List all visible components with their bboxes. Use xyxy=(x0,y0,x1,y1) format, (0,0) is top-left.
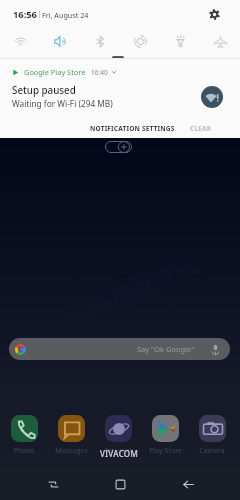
staticText: Internet xyxy=(105,446,132,456)
staticText: NOTIFICATION SETTINGS xyxy=(90,124,175,133)
button[interactable]: Aeroplane mode xyxy=(206,27,234,55)
button[interactable]: Say "Ok Google" xyxy=(9,338,230,360)
button[interactable]: Flashlight xyxy=(166,27,194,55)
button[interactable]: Expand notifications xyxy=(105,141,132,153)
staticText: Play Store xyxy=(149,446,182,456)
staticText: Waiting for Wi-Fi (294 MB) xyxy=(12,98,113,109)
button[interactable]: Wi-Fi xyxy=(6,27,34,55)
button[interactable]: NOTIFICATION SETTINGS xyxy=(80,121,183,136)
staticText: 16:40 xyxy=(91,68,108,77)
button[interactable]: Internet xyxy=(95,415,141,456)
button[interactable]: Home xyxy=(106,470,134,498)
staticText: Phone xyxy=(13,446,35,456)
staticText: Camera xyxy=(199,446,225,456)
button[interactable]: Auto rotate xyxy=(126,27,154,55)
button[interactable]: Recents xyxy=(39,470,67,498)
button[interactable]: Settings xyxy=(204,4,224,24)
button[interactable]: Play Store xyxy=(142,415,188,456)
button[interactable]: Back xyxy=(174,470,202,498)
staticText: 16:56 xyxy=(13,8,37,21)
staticText: Setup paused xyxy=(12,84,76,97)
staticText: CLEAR xyxy=(190,124,212,133)
button[interactable]: Bluetooth xyxy=(86,27,114,55)
button[interactable]: Camera xyxy=(189,415,235,456)
staticText: Fri, August 24 xyxy=(42,10,89,20)
button[interactable]: Phone xyxy=(1,415,47,456)
staticText: VIVACOM xyxy=(100,448,139,459)
staticText: Google Play Store xyxy=(24,67,86,77)
button[interactable]: Messages xyxy=(48,415,94,456)
button[interactable]: CLEAR xyxy=(183,121,240,136)
staticText: Messages xyxy=(55,446,88,456)
staticText: Say "Ok Google" xyxy=(137,344,195,354)
button[interactable]: Sound xyxy=(46,27,74,55)
